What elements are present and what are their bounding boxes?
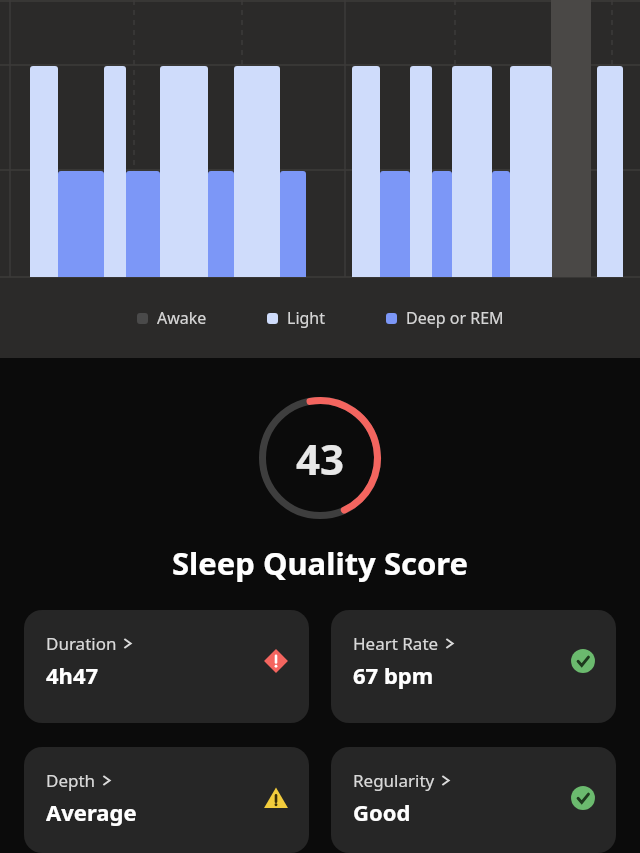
staticText: Light: [287, 307, 326, 329]
staticText: Deep or REM: [406, 307, 504, 329]
staticText: 4h47: [46, 660, 99, 690]
staticText: Depth: [46, 769, 96, 792]
staticText: Awake: [157, 307, 207, 329]
staticText: Heart Rate: [353, 632, 439, 655]
staticText: Good: [353, 797, 411, 827]
staticText: 67 bpm: [353, 660, 434, 690]
other: Alert: [263, 648, 289, 674]
staticText: 43: [296, 430, 345, 487]
staticText: Average: [46, 797, 137, 827]
button[interactable]: Depth: [24, 747, 309, 853]
staticText: Sleep Quality Score: [0, 542, 640, 584]
other: Warning: [263, 785, 289, 811]
staticText: Regularity: [353, 769, 435, 792]
button[interactable]: Regularity: [331, 747, 616, 853]
other: Good: [570, 785, 596, 811]
button[interactable]: Duration: [24, 610, 309, 723]
other: Good: [570, 648, 596, 674]
button[interactable]: Heart Rate: [331, 610, 616, 723]
staticText: Duration: [46, 632, 117, 655]
